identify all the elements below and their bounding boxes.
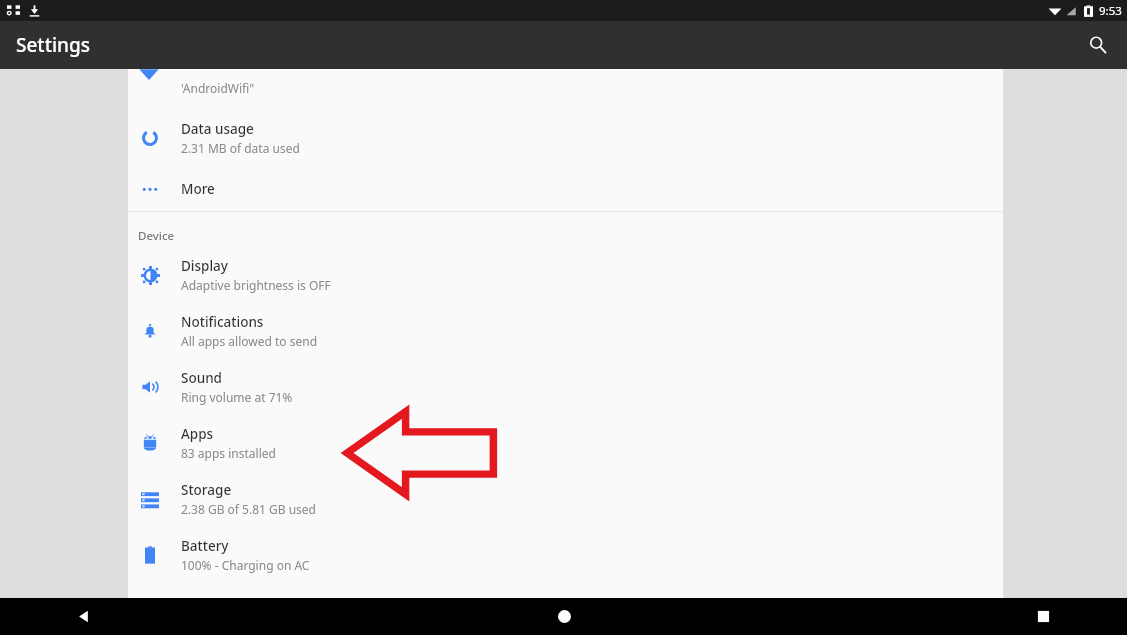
- button[interactable]: 'AndroidWifi": [128, 69, 1003, 110]
- staticText: Notifications: [181, 313, 264, 331]
- staticText: More: [181, 180, 215, 198]
- button[interactable]: Home: [540, 598, 588, 635]
- staticText: Settings: [16, 32, 90, 58]
- button[interactable]: Back: [60, 598, 108, 635]
- staticText: Battery: [181, 537, 229, 555]
- staticText: Adaptive brightness is OFF: [181, 277, 331, 293]
- staticText: Device: [138, 228, 175, 244]
- staticText: 2.31 MB of data used: [181, 140, 300, 156]
- staticText: Ring volume at 71%: [181, 389, 293, 405]
- button[interactable]: Search: [1077, 24, 1119, 66]
- button[interactable]: Recents: [1019, 598, 1067, 635]
- staticText: All apps allowed to send: [181, 333, 318, 349]
- button[interactable]: Display: [128, 247, 1003, 303]
- staticText: Data usage: [181, 120, 254, 138]
- staticText: 'AndroidWifi": [181, 80, 255, 96]
- staticText: Apps: [181, 425, 214, 443]
- staticText: 83 apps installed: [181, 445, 276, 461]
- button[interactable]: More: [128, 166, 1003, 211]
- staticText: Storage: [181, 481, 232, 499]
- staticText: Display: [181, 257, 228, 275]
- button[interactable]: Notifications: [128, 303, 1003, 359]
- staticText: 9:53: [1099, 3, 1122, 19]
- button[interactable]: Battery: [128, 527, 1003, 583]
- staticText: 2.38 GB of 5.81 GB used: [181, 501, 316, 517]
- button[interactable]: Sound: [128, 359, 1003, 415]
- button[interactable]: Data usage: [128, 110, 1003, 166]
- staticText: Sound: [181, 369, 222, 387]
- staticText: 100% - Charging on AC: [181, 557, 310, 573]
- button[interactable]: Apps: [128, 415, 1003, 471]
- button[interactable]: Storage: [128, 471, 1003, 527]
